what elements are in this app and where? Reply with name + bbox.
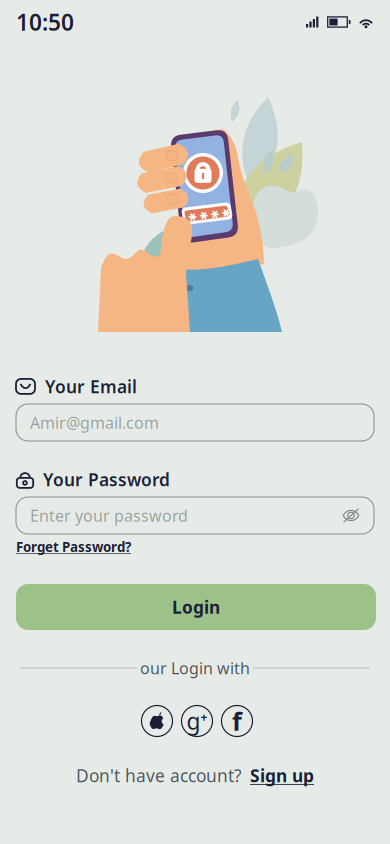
button[interactable]: Sign in with Apple bbox=[139, 703, 175, 739]
button[interactable]: Enter your password bbox=[16, 497, 374, 534]
staticText: Forget Password? bbox=[16, 538, 131, 556]
button[interactable]: Sign in with Google bbox=[179, 703, 215, 739]
staticText: + bbox=[200, 709, 207, 725]
staticText: Your Password bbox=[43, 468, 170, 491]
staticText: Amir@gmail.com bbox=[30, 412, 159, 433]
staticText: Sign up bbox=[250, 764, 314, 787]
staticText: Don't have account? bbox=[76, 764, 242, 787]
staticText: 10:50 bbox=[16, 7, 74, 37]
staticText: g bbox=[186, 706, 200, 736]
button[interactable]: Sign up bbox=[250, 764, 314, 787]
staticText: Login bbox=[172, 595, 220, 618]
button[interactable]: Sign in with Facebook bbox=[219, 703, 255, 739]
staticText: Enter your password bbox=[30, 505, 188, 526]
button[interactable]: Forget Password? bbox=[16, 538, 131, 556]
staticText: f bbox=[232, 704, 242, 738]
button[interactable]: Login bbox=[16, 584, 376, 630]
staticText: our Login with bbox=[140, 657, 250, 679]
button[interactable]: Amir@gmail.com bbox=[16, 404, 374, 441]
staticText: Your Email bbox=[45, 375, 137, 398]
